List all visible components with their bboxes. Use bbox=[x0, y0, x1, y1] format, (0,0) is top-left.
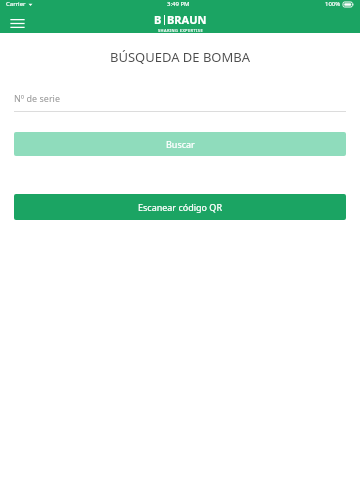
staticText: 100% bbox=[325, 0, 341, 8]
button[interactable]: Buscar bbox=[14, 132, 346, 156]
staticText: 3:49 PM bbox=[167, 0, 190, 8]
staticText: BRAUN bbox=[167, 12, 207, 27]
button[interactable]: Menu bbox=[8, 14, 26, 32]
staticText: B bbox=[154, 12, 162, 27]
staticText: Escanear código QR bbox=[138, 201, 222, 213]
staticText: Buscar bbox=[166, 138, 195, 150]
staticText: SHARING EXPERTISE bbox=[158, 28, 204, 33]
button[interactable]: Escanear código QR bbox=[14, 194, 346, 220]
staticText: Nº de serie bbox=[14, 92, 61, 104]
staticText: BÚSQUEDA DE BOMBA bbox=[0, 48, 360, 66]
staticText: Carrier bbox=[6, 0, 26, 8]
